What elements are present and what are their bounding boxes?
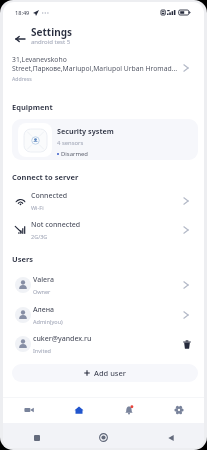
staticText: Security system (57, 126, 114, 136)
staticText: Settings (31, 25, 72, 39)
staticText: Address (12, 75, 32, 82)
button[interactable]: Back (12, 31, 28, 47)
staticText: Connected (31, 191, 67, 201)
staticText: 2G/3G (31, 233, 48, 240)
staticText: Equipment (12, 102, 53, 112)
staticText: 18:49 (15, 9, 30, 17)
button[interactable]: Valera (3, 272, 204, 298)
staticText: 4 sensors (57, 139, 84, 147)
button[interactable]: Notifications (104, 397, 154, 423)
staticText: Admin(you) (33, 318, 63, 325)
button[interactable]: Home (54, 397, 104, 423)
button[interactable]: Delete user (180, 337, 194, 351)
staticText: 31,Levanevskoho Street,Паркове,Mariupol,… (12, 55, 178, 73)
button[interactable]: cuker@yandex.ru (3, 331, 204, 357)
button[interactable]: Settings (154, 397, 204, 423)
button[interactable]: Not connected (3, 217, 204, 242)
button[interactable]: Connected (3, 188, 204, 213)
staticText: cuker@yandex.ru (33, 334, 92, 344)
button[interactable]: Security system (12, 119, 198, 160)
staticText: Valera (33, 275, 54, 285)
staticText: Алена (33, 305, 55, 315)
staticText: Not connected (31, 220, 81, 230)
staticText: Connect to server (12, 172, 79, 182)
staticText: Disarmed (61, 150, 88, 158)
staticText: Users (12, 254, 34, 264)
button[interactable]: 31,Levanevskoho Street,Паркове,Mariupol,… (3, 52, 204, 84)
staticText: Wi-Fi (31, 204, 44, 211)
staticText: android test 5 (31, 38, 71, 46)
staticText: Owner (33, 288, 51, 295)
staticText: Invited (33, 347, 51, 354)
button[interactable]: Алена (3, 302, 204, 328)
button[interactable]: Add user (12, 364, 198, 382)
staticText: Add user (94, 368, 126, 378)
button[interactable]: Cameras (3, 397, 54, 423)
